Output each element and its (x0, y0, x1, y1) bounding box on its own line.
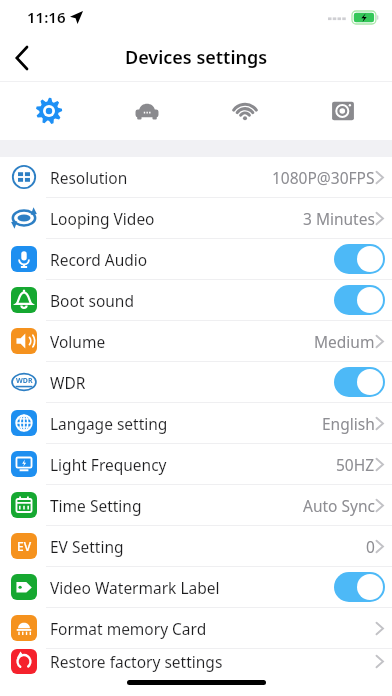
staticText: Looping Video (50, 208, 155, 229)
button[interactable] (334, 285, 385, 315)
staticText: Light Frequency (50, 454, 167, 475)
button[interactable]: Volume (0, 321, 392, 361)
staticText: Time Setting (50, 495, 142, 516)
button[interactable]: Time Setting (0, 485, 392, 525)
button[interactable]: Resolution (0, 157, 392, 197)
button[interactable]: Record Audio (0, 239, 392, 279)
button[interactable]: EV (0, 526, 392, 566)
button[interactable]: Looping Video (0, 198, 392, 238)
staticText: Resolution (50, 167, 128, 188)
staticText: Restore factory settings (50, 651, 223, 672)
button[interactable]: Langage setting (0, 403, 392, 443)
staticText: English (322, 413, 375, 434)
staticText: EV (17, 538, 32, 554)
staticText: Devices settings (125, 45, 268, 70)
staticText: 1080P@30FPS (272, 167, 375, 188)
button[interactable]: Wifi (196, 82, 294, 140)
staticText: Langage setting (50, 413, 168, 434)
staticText: WDR (50, 372, 86, 393)
button[interactable]: Light Frequency (0, 444, 392, 484)
button[interactable] (334, 572, 385, 602)
button[interactable]: WDR (0, 362, 392, 402)
staticText: 50HZ (336, 454, 375, 475)
staticText: Medium (314, 331, 375, 352)
button[interactable]: Back (0, 36, 44, 80)
button[interactable]: Restore factory settings (0, 649, 392, 674)
staticText: Volume (50, 331, 106, 352)
staticText: EV Setting (50, 536, 124, 557)
button[interactable]: Camera (294, 82, 392, 140)
staticText: 0 (366, 536, 375, 557)
button[interactable]: Car (98, 82, 196, 140)
staticText: Video Watermark Label (50, 577, 220, 598)
staticText: Boot sound (50, 290, 134, 311)
button[interactable] (334, 244, 385, 274)
staticText: 11:16 (27, 7, 66, 27)
staticText: Format memory Card (50, 618, 207, 639)
button[interactable]: Settings (0, 82, 98, 140)
staticText: Auto Sync (303, 495, 375, 516)
staticText: 3 Minutes (303, 208, 375, 229)
button[interactable] (334, 367, 385, 397)
staticText: Record Audio (50, 249, 148, 270)
button[interactable]: Video Watermark Label (0, 567, 392, 607)
staticText: WDR (16, 376, 33, 386)
button[interactable]: Format memory Card (0, 608, 392, 648)
button[interactable]: Boot sound (0, 280, 392, 320)
